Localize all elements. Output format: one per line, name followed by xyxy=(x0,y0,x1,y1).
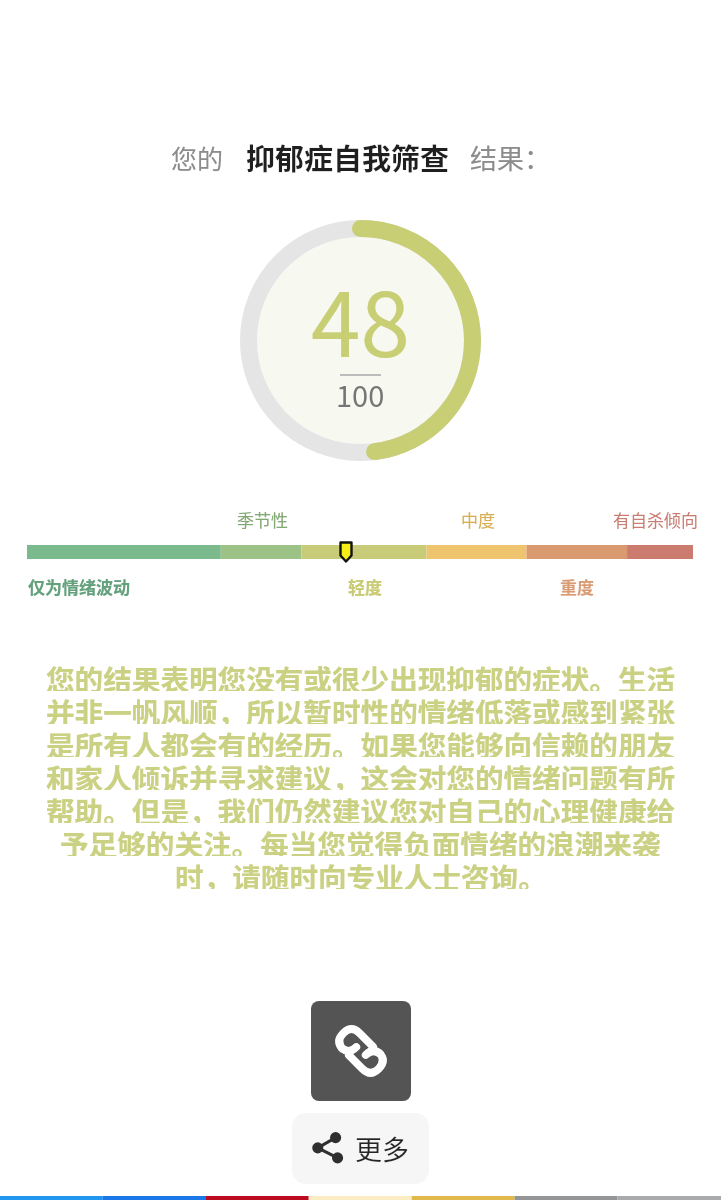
staticText: 并非一帆风顺，所以暂时性的情绪低落或感到紧张 xyxy=(46,691,676,724)
staticText: 您的结果表明您没有或很少出现抑郁的症状。生活 xyxy=(46,658,676,691)
staticText: 仅为情绪波动 xyxy=(28,574,130,599)
button[interactable]: 复制链接 xyxy=(311,1001,411,1101)
button[interactable]: 更多 xyxy=(292,1113,429,1184)
staticText: 更多 xyxy=(355,1129,409,1168)
staticText: 中度 xyxy=(461,507,495,532)
staticText: 时，请随时向专业人士咨询。 xyxy=(175,856,547,889)
staticText: 您的 xyxy=(171,139,224,177)
staticText: 予足够的关注。每当您觉得负面情绪的浪潮来袭 xyxy=(60,823,661,856)
staticText: 和家人倾诉并寻求建议，这会对您的情绪问题有所 xyxy=(46,757,676,790)
staticText: 轻度 xyxy=(348,574,382,599)
staticText: 结果： xyxy=(470,138,551,177)
staticText: 重度 xyxy=(560,574,594,599)
staticText: 是所有人都会有的经历。如果您能够向信赖的朋友 xyxy=(46,724,676,757)
staticText: 帮助。但是，我们仍然建议您对自己的心理健康给 xyxy=(46,790,676,823)
staticText: 抑郁症自我筛查 xyxy=(246,136,450,178)
staticText: 100 xyxy=(336,373,385,415)
staticText: 48 xyxy=(311,254,410,383)
staticText: 季节性 xyxy=(237,507,288,532)
staticText: 有自杀倾向 xyxy=(613,507,698,532)
